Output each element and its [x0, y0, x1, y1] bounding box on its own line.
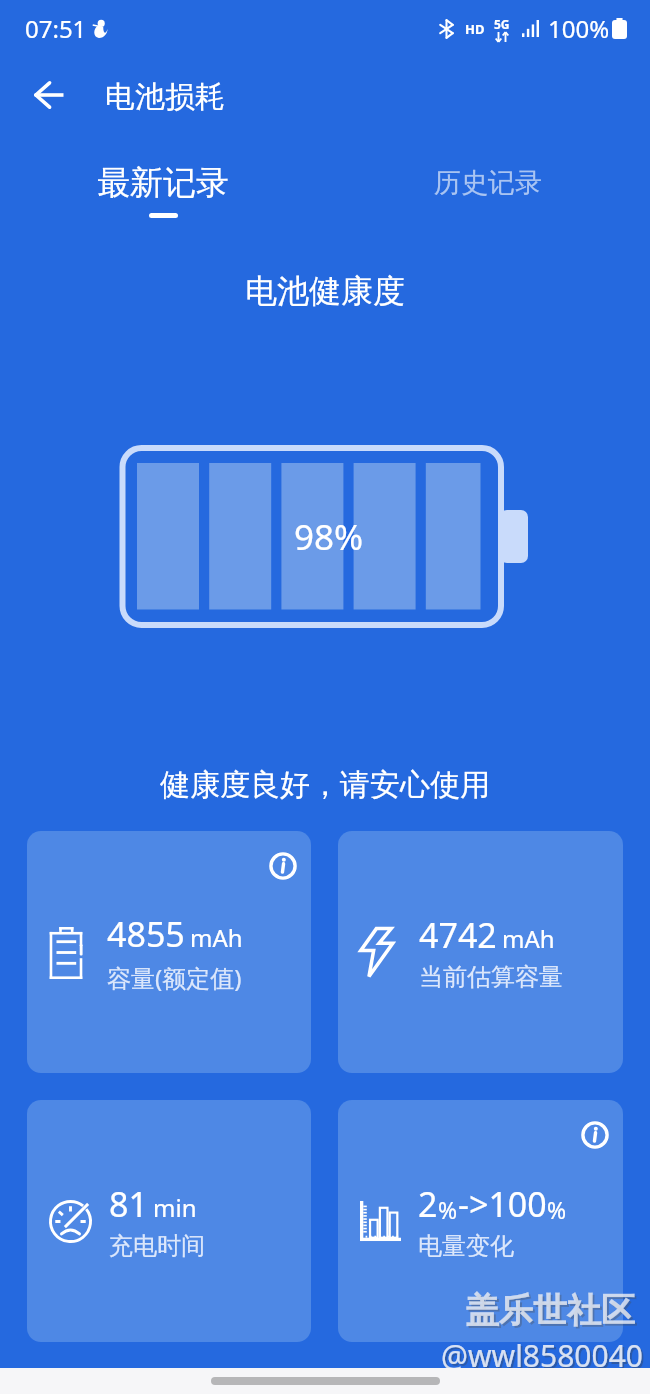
button[interactable]: 最新记录 [97, 162, 229, 218]
staticText: 4742 [419, 912, 497, 958]
staticText: HD [465, 20, 485, 38]
staticText: % [438, 1194, 458, 1225]
staticText: 最新记录 [97, 162, 229, 204]
staticText: 电池损耗 [105, 78, 225, 116]
staticText: 5G [494, 16, 510, 32]
staticText: min [153, 1191, 197, 1224]
button[interactable]: Info [338, 1100, 623, 1342]
staticText: % [547, 1194, 567, 1225]
button[interactable]: 历史记录 [434, 166, 542, 200]
staticText: 电量变化 [418, 1231, 514, 1261]
staticText: mAh [502, 922, 555, 955]
staticText: 07:51 [25, 12, 87, 45]
staticText: 历史记录 [434, 166, 542, 200]
staticText: 盖乐世社区 [467, 1291, 637, 1334]
staticText: 充电时间 [109, 1231, 205, 1261]
staticText: 98% [294, 513, 364, 561]
button[interactable]: Info [580, 1120, 610, 1150]
staticText: 电池健康度 [0, 271, 650, 311]
staticText: 当前估算容量 [419, 962, 563, 992]
staticText: @wwl8580040 [441, 1335, 643, 1376]
button[interactable]: Info [27, 831, 311, 1073]
staticText: @wwl8580040 [443, 1337, 645, 1378]
staticText: ->100 [458, 1181, 547, 1227]
button[interactable]: Info [268, 851, 298, 881]
button[interactable]: Back [26, 72, 72, 118]
staticText: 4855 [107, 911, 185, 957]
staticText: 健康度良好，请安心使用 [0, 766, 650, 804]
button[interactable]: 4742 [338, 831, 623, 1073]
staticText: 100% [548, 12, 610, 45]
staticText: 2 [418, 1181, 438, 1227]
staticText: 81 [109, 1181, 148, 1227]
button[interactable]: 81 [27, 1100, 311, 1342]
staticText: mAh [190, 921, 243, 954]
staticText: 容量(额定值) [107, 961, 242, 994]
staticText: 盖乐世社区 [465, 1289, 635, 1332]
